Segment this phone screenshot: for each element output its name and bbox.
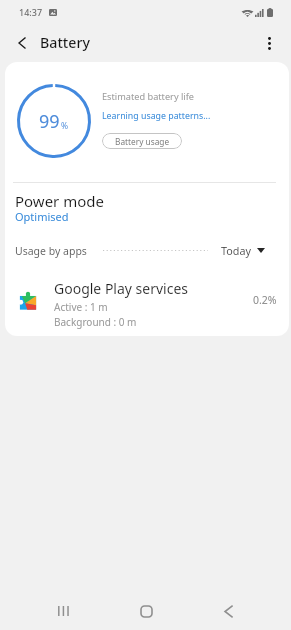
staticText: Battery usage <box>115 136 170 147</box>
button[interactable]: Home <box>124 592 168 630</box>
staticText: Power mode <box>15 191 104 211</box>
staticText: 99 <box>39 109 60 134</box>
staticText: Learning usage patterns... <box>102 110 211 122</box>
staticText: Background : 0 m <box>54 315 137 329</box>
staticText: Estimated battery life <box>102 90 195 103</box>
button[interactable]: Google Play services <box>5 274 289 334</box>
staticText: Battery <box>40 33 90 52</box>
staticText: Usage by apps <box>15 244 87 258</box>
staticText: Today <box>221 243 251 258</box>
button[interactable]: Recent apps <box>42 592 86 630</box>
staticText: Optimised <box>15 209 69 224</box>
staticText: % <box>61 120 69 132</box>
button[interactable]: More options <box>252 26 286 60</box>
staticText: Active : 1 m <box>54 300 108 314</box>
button[interactable]: Back <box>206 592 250 630</box>
staticText: 14:37 <box>19 6 43 18</box>
button[interactable]: Battery usage <box>102 133 182 149</box>
staticText: 0.2% <box>253 293 277 307</box>
button[interactable]: Learning usage patterns... <box>102 110 211 122</box>
button[interactable]: Today <box>221 237 265 264</box>
button[interactable]: Power mode <box>5 183 289 237</box>
staticText: Google Play services <box>54 279 189 298</box>
button[interactable]: Navigate up <box>5 26 39 60</box>
